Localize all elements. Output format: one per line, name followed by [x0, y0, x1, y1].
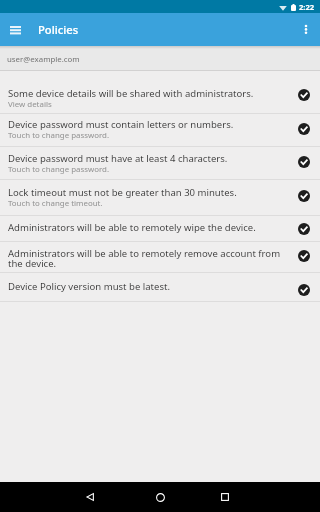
- button[interactable]: Device password must have at least 4 cha…: [0, 147, 320, 179]
- staticText: Touch to change password.: [8, 164, 110, 175]
- staticText: Device Policy version must be latest.: [8, 280, 170, 293]
- staticText: 2:22: [299, 2, 315, 12]
- staticText: Touch to change timeout.: [8, 198, 103, 209]
- staticText: Lock timeout must not be greater than 30…: [8, 186, 237, 199]
- staticText: View details: [8, 99, 52, 110]
- staticText: Device password must contain letters or …: [8, 118, 234, 131]
- button[interactable]: Device Policy version must be latest.: [0, 273, 320, 301]
- button[interactable]: [145, 482, 175, 512]
- button[interactable]: Administrators will be able to remotely …: [0, 242, 320, 272]
- staticText: Policies: [38, 22, 79, 37]
- button[interactable]: [296, 20, 316, 40]
- button[interactable]: [4, 19, 26, 41]
- button[interactable]: [75, 482, 105, 512]
- button[interactable]: Device password must contain letters or …: [0, 114, 320, 146]
- staticText: Device password must have at least 4 cha…: [8, 152, 228, 165]
- button[interactable]: Lock timeout must not be greater than 30…: [0, 180, 320, 215]
- staticText: Administrators will be able to remotely …: [8, 221, 256, 234]
- staticText: Some device details will be shared with …: [8, 87, 254, 100]
- staticText: Touch to change password.: [8, 130, 110, 141]
- button[interactable]: Some device details will be shared with …: [0, 71, 320, 113]
- staticText: user@example.com: [7, 54, 80, 65]
- staticText: Administrators will be able to remotely …: [8, 247, 281, 270]
- button[interactable]: Administrators will be able to remotely …: [0, 216, 320, 241]
- button[interactable]: user@example.com: [0, 46, 320, 71]
- button[interactable]: [210, 482, 240, 512]
